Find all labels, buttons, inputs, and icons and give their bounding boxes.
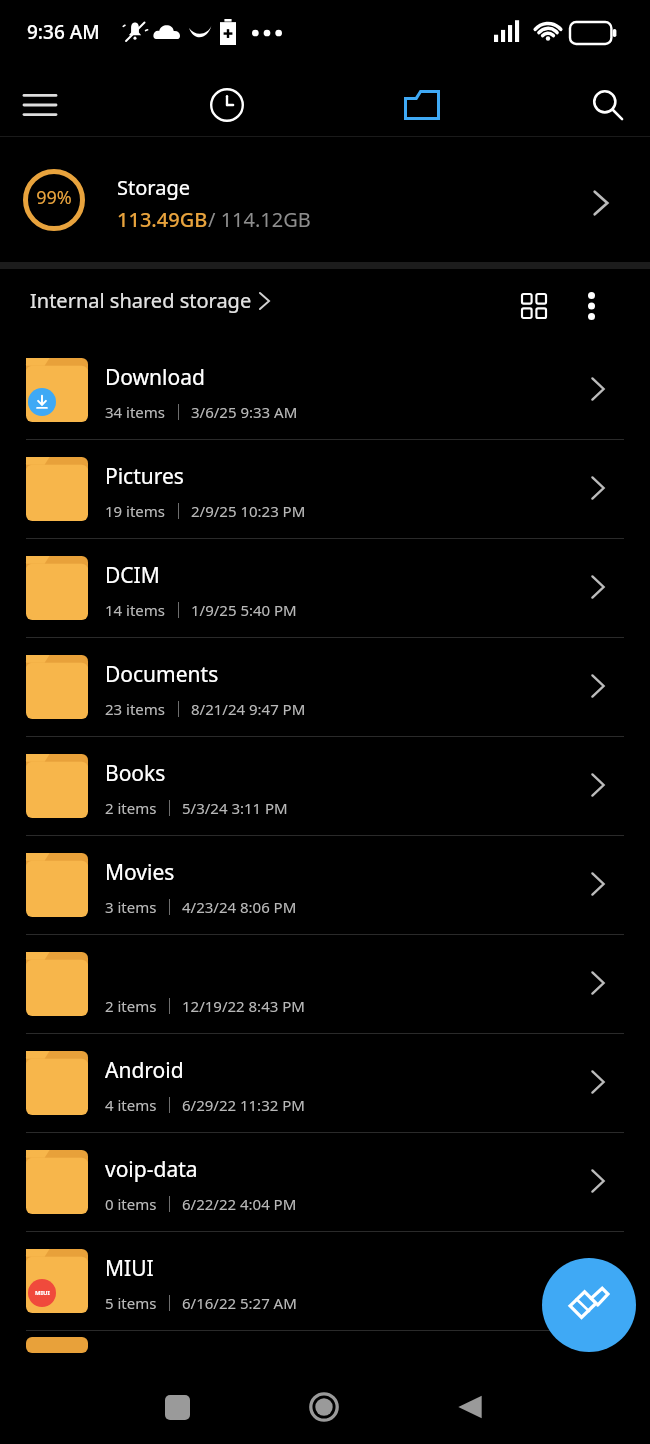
button[interactable]: Pictures xyxy=(0,440,650,538)
staticText: 113.49GB xyxy=(117,206,208,233)
staticText: Internal shared storage xyxy=(30,287,252,314)
staticText: 14 items xyxy=(105,600,166,620)
button[interactable]: Grid view xyxy=(505,277,563,335)
staticText: 6/29/22 11:32 PM xyxy=(182,1095,305,1115)
staticText: 4/23/24 8:06 PM xyxy=(182,897,297,917)
button[interactable]: Movies xyxy=(0,836,650,934)
button[interactable]: Documents xyxy=(0,638,650,736)
button[interactable]: Books xyxy=(0,737,650,835)
staticText: DCIM xyxy=(105,561,160,590)
staticText: 99% xyxy=(23,185,85,210)
button[interactable]: 2 items xyxy=(0,935,650,1033)
staticText: Download xyxy=(105,363,205,392)
staticText: 5 items xyxy=(105,1293,157,1313)
staticText: Documents xyxy=(105,660,219,689)
button[interactable]: More options xyxy=(562,277,620,335)
staticText: 19 items xyxy=(105,501,166,521)
staticText: 0 items xyxy=(105,1194,157,1214)
staticText: Android xyxy=(105,1056,184,1085)
button[interactable]: Back xyxy=(440,1377,500,1437)
staticText: Storage xyxy=(117,174,190,201)
staticText: 3/6/25 9:33 AM xyxy=(191,402,298,422)
button[interactable]: Clean up xyxy=(542,1258,636,1352)
staticText: 1/9/25 5:40 PM xyxy=(191,600,297,620)
staticText: 34 items xyxy=(105,402,166,422)
staticText: 6/16/22 5:27 AM xyxy=(182,1293,297,1313)
button[interactable]: Download xyxy=(0,341,650,439)
staticText: / 114.12GB xyxy=(208,206,311,233)
button[interactable]: MIUI xyxy=(0,1232,650,1330)
staticText: MIUI xyxy=(35,1289,50,1297)
button[interactable]: Menu xyxy=(10,75,70,135)
staticText: 4 items xyxy=(105,1095,157,1115)
button[interactable]: Recents xyxy=(147,1377,207,1437)
staticText: 3 items xyxy=(105,897,157,917)
staticText: 8/21/24 9:47 PM xyxy=(191,699,306,719)
staticText: 2/9/25 10:23 PM xyxy=(191,501,306,521)
staticText: 23 items xyxy=(105,699,166,719)
staticText: Pictures xyxy=(105,462,184,491)
staticText: 5/3/24 3:11 PM xyxy=(182,798,288,818)
staticText: 9:36 AM xyxy=(27,19,100,45)
button[interactable]: Internal shared storage xyxy=(30,287,271,314)
button[interactable]: DCIM xyxy=(0,539,650,637)
staticText: MIUI xyxy=(105,1254,154,1283)
button[interactable]: Search xyxy=(578,75,638,135)
staticText: 12/19/22 8:43 PM xyxy=(182,996,305,1016)
button[interactable]: Android xyxy=(0,1034,650,1132)
staticText: 6/22/22 4:04 PM xyxy=(182,1194,297,1214)
button[interactable]: 99% xyxy=(0,137,650,262)
staticText: Books xyxy=(105,759,166,788)
staticText: 2 items xyxy=(105,798,157,818)
staticText: Movies xyxy=(105,858,175,887)
button[interactable]: Recent xyxy=(197,75,257,135)
button[interactable]: voip-data xyxy=(0,1133,650,1231)
staticText: 2 items xyxy=(105,996,157,1016)
staticText: voip-data xyxy=(105,1155,198,1184)
button[interactable] xyxy=(0,1331,650,1353)
button[interactable]: Files xyxy=(392,75,452,135)
button[interactable]: Home xyxy=(294,1377,354,1437)
